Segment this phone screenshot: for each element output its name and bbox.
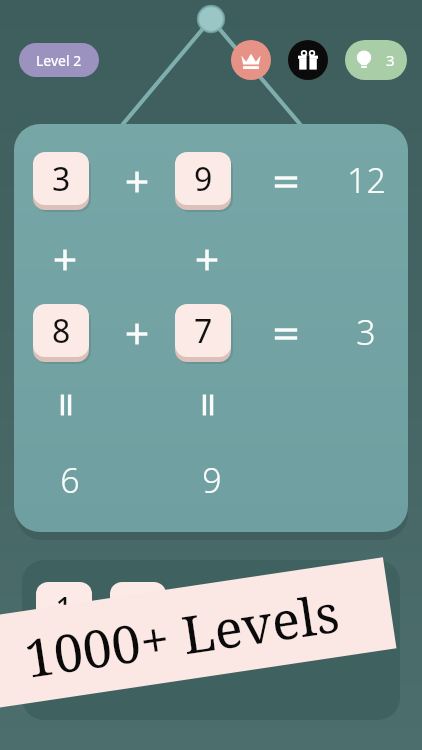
staticText: 6 bbox=[129, 587, 148, 631]
staticText: 9 bbox=[202, 457, 222, 503]
staticText: 6 bbox=[60, 457, 80, 503]
button[interactable]: 3 bbox=[14, 124, 408, 532]
staticText: 3 bbox=[386, 50, 395, 70]
button[interactable]: Premium bbox=[231, 40, 271, 80]
staticText: 8 bbox=[52, 309, 71, 353]
button[interactable]: 7 bbox=[175, 304, 233, 364]
staticText: 7 bbox=[194, 309, 213, 353]
button[interactable]: 3 bbox=[33, 152, 91, 212]
staticText: 3 bbox=[52, 157, 71, 201]
staticText: 1000+ Levels bbox=[20, 576, 344, 693]
staticText: 3 bbox=[356, 309, 376, 355]
staticText: 1 bbox=[55, 587, 74, 631]
staticText: 9 bbox=[194, 157, 213, 201]
button[interactable]: 9 bbox=[175, 152, 233, 212]
staticText: Level 2 bbox=[36, 51, 82, 70]
button[interactable]: Level 2 bbox=[19, 43, 99, 77]
staticText: 12 bbox=[347, 157, 386, 203]
button[interactable]: Hints 3 bbox=[345, 40, 407, 80]
button[interactable]: Gift bbox=[288, 40, 328, 80]
button[interactable]: 8 bbox=[33, 304, 91, 364]
